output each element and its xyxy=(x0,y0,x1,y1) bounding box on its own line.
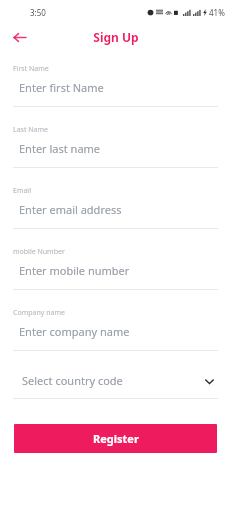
staticText: 41% xyxy=(209,7,225,18)
staticText: Enter mobile number xyxy=(19,263,130,278)
staticText: Enter first Name xyxy=(19,80,104,95)
staticText: First Name xyxy=(13,64,49,74)
button[interactable]: Company name xyxy=(0,308,231,351)
staticText: Enter email address xyxy=(19,202,122,217)
staticText: Enter company name xyxy=(19,324,130,339)
staticText: Select country code xyxy=(22,373,123,388)
button[interactable]: Register xyxy=(14,424,217,453)
staticText: Enter last name xyxy=(19,141,101,156)
other: Select country code xyxy=(203,375,215,387)
staticText: Company name xyxy=(13,308,65,318)
button[interactable]: First Name xyxy=(0,64,231,107)
staticText: Email xyxy=(13,186,31,196)
staticText: 3:50 xyxy=(30,7,46,18)
staticText: Last Name xyxy=(13,125,49,135)
button[interactable]: Email xyxy=(0,186,231,229)
staticText: mobile Number xyxy=(13,247,65,257)
button[interactable]: Last Name xyxy=(0,125,231,168)
button[interactable]: Select country code xyxy=(0,373,231,399)
button[interactable]: Back xyxy=(8,26,30,48)
staticText: Sign Up xyxy=(93,29,139,45)
button[interactable]: mobile Number xyxy=(0,247,231,290)
staticText: Register xyxy=(93,431,139,446)
